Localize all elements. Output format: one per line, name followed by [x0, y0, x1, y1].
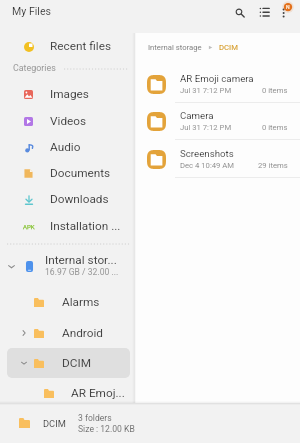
staticText: Downloads	[50, 192, 109, 206]
button[interactable]: Camera	[135, 103, 300, 140]
staticText: N	[286, 4, 290, 10]
button[interactable]: Downloads	[0, 186, 135, 212]
staticText: Videos	[50, 114, 87, 128]
staticText: Jul 31 7:12 PM	[180, 123, 232, 132]
staticText: Recent files	[50, 39, 112, 53]
button[interactable]: More options	[276, 0, 298, 22]
button[interactable]: Audio	[0, 134, 135, 160]
button[interactable]: AR Emoj...	[7, 378, 130, 408]
button[interactable]: Change view	[254, 1, 276, 23]
staticText: Audio	[50, 140, 81, 154]
staticText: Internal stor...	[45, 253, 117, 267]
staticText: My Files	[12, 5, 51, 17]
staticText: Installation ...	[50, 219, 121, 233]
button[interactable]: Documents	[0, 160, 135, 186]
staticText: Documents	[50, 166, 111, 180]
staticText: 16.97 GB / 32.00 ...	[45, 267, 119, 277]
staticText: Screenshots	[180, 148, 234, 159]
button[interactable]: Videos	[0, 108, 135, 134]
button[interactable]: DCIM	[7, 348, 130, 378]
staticText: DCIM	[43, 418, 66, 429]
button[interactable]: Recent files	[0, 33, 135, 59]
staticText: AR Emoj...	[71, 386, 125, 400]
staticText: Dec 4 10:49 AM	[180, 161, 235, 170]
staticText: Size : 12.00 KB	[78, 424, 135, 434]
button[interactable]: AR Emoji camera	[135, 66, 300, 103]
button[interactable]: Images	[0, 81, 135, 107]
staticText: DCIM	[62, 356, 91, 370]
staticText: Images	[50, 87, 89, 101]
staticText: AR Emoji camera	[180, 73, 254, 84]
staticText: 0 items	[262, 86, 288, 95]
button[interactable]: APK	[0, 213, 135, 239]
staticText: 3 folders	[78, 413, 112, 423]
button[interactable]: Internal stor...	[0, 251, 135, 281]
staticText: Jul 31 7:12 PM	[180, 86, 232, 95]
button[interactable]: DCIM	[219, 43, 238, 52]
staticText: 0 items	[262, 123, 288, 132]
staticText: Categories	[13, 63, 56, 73]
staticText: Android	[62, 326, 103, 340]
button[interactable]: Internal storage	[148, 43, 202, 52]
staticText: Camera	[180, 110, 214, 121]
button[interactable]: Android	[7, 318, 130, 348]
staticText: 29 items	[258, 161, 288, 170]
staticText: Alarms	[62, 295, 100, 309]
button[interactable]: Search	[228, 1, 250, 23]
button[interactable]: Screenshots	[135, 141, 300, 178]
staticText: APK	[23, 223, 35, 230]
button[interactable]: Alarms	[7, 287, 130, 317]
